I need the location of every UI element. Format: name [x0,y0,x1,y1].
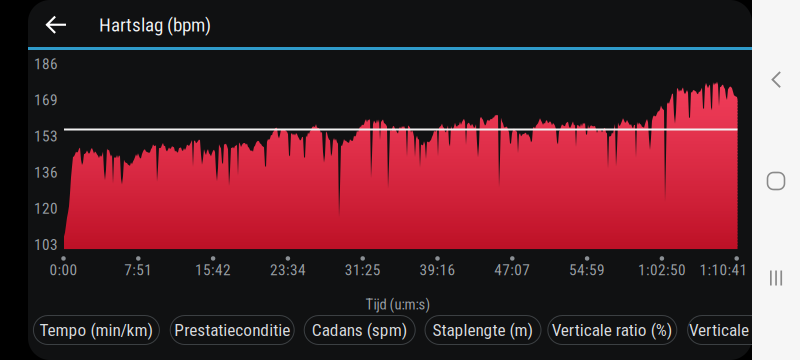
staticText: 169 [34,91,58,109]
staticText: Tijd (u:m:s) [365,296,430,313]
staticText: Cadans (spm) [312,320,408,340]
button[interactable]: Verticale oscillatie [688,315,800,344]
staticText: 54:59 [569,261,605,279]
staticText: Verticale ratio (%) [552,320,673,340]
button[interactable]: Back [752,58,800,102]
staticText: 136 [34,163,58,181]
staticText: Verticale oscillatie [689,320,800,340]
staticText: 0:00 [49,261,77,279]
staticText: 103 [34,236,58,254]
button[interactable]: Cadans (spm) [304,315,415,344]
staticText: 23:34 [270,261,306,279]
staticText: Tempo (min/km) [39,320,153,340]
staticText: 31:25 [345,261,381,279]
button[interactable]: Back [33,2,79,48]
staticText: 7:51 [124,261,152,279]
staticText: Staplengte (m) [432,320,533,340]
staticText: 47:07 [494,261,530,279]
staticText: 1:10:41 [699,261,747,279]
button[interactable]: Staplengte (m) [425,315,541,344]
staticText: 153 [34,127,58,145]
button[interactable]: Home [752,159,800,203]
button[interactable]: Recent apps [752,256,800,300]
button[interactable]: Prestatieconditie [170,315,294,344]
staticText: 39:16 [419,261,455,279]
staticText: Hartslag (bpm) [99,14,211,36]
button[interactable]: Tempo (min/km) [33,315,159,344]
staticText: Prestatieconditie [174,320,290,340]
staticText: 15:42 [195,261,231,279]
staticText: 186 [34,55,58,73]
staticText: 1:02:50 [638,261,686,279]
button[interactable]: Verticale ratio (%) [548,315,677,344]
staticText: 120 [34,199,58,217]
